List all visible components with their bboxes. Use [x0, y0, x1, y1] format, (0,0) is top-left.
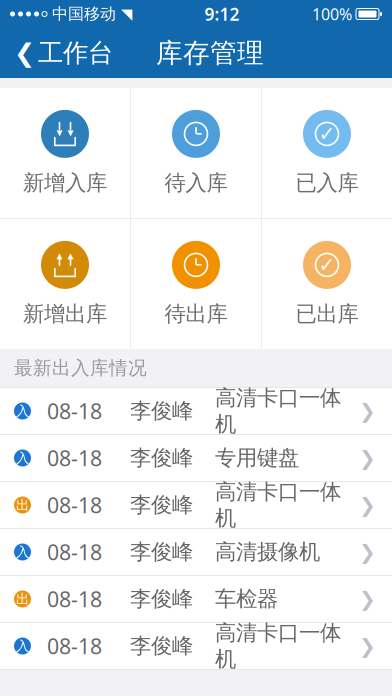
- staticText: 工作台: [38, 37, 113, 68]
- staticText: ❯: [359, 541, 376, 563]
- staticText: ✓: [318, 253, 335, 276]
- button[interactable]: ▴: [0, 219, 130, 349]
- button[interactable]: 入: [0, 623, 392, 669]
- staticText: ▴: [56, 249, 62, 262]
- staticText: 已出库: [295, 301, 358, 327]
- button[interactable]: 入: [0, 388, 392, 434]
- staticText: 已入库: [295, 170, 358, 196]
- staticText: 高清摄像机: [215, 539, 320, 565]
- staticText: 08-18: [47, 538, 102, 566]
- button[interactable]: ❮: [0, 29, 113, 76]
- button[interactable]: 出: [0, 576, 392, 622]
- staticText: 入: [16, 450, 29, 466]
- staticText: 专用键盘: [215, 445, 299, 471]
- staticText: 库存管理: [156, 37, 264, 69]
- staticText: ▴: [67, 249, 73, 262]
- staticText: ✓: [318, 122, 335, 145]
- staticText: 新增出库: [23, 301, 107, 327]
- staticText: 出: [16, 497, 29, 513]
- staticText: ❯: [359, 494, 376, 516]
- staticText: ❯: [359, 588, 376, 610]
- staticText: 中国移动: [52, 4, 116, 24]
- button[interactable]: 入: [0, 435, 392, 481]
- staticText: 李俊峰: [130, 586, 193, 612]
- button[interactable]: 出: [0, 482, 392, 528]
- staticText: 新增入库: [23, 170, 107, 196]
- staticText: 车检器: [215, 586, 278, 612]
- staticText: ❯: [359, 400, 376, 422]
- staticText: ❮: [14, 39, 35, 67]
- staticText: 待出库: [164, 301, 227, 327]
- staticText: 08-18: [47, 491, 102, 519]
- staticText: 入: [16, 544, 29, 560]
- staticText: 李俊峰: [130, 492, 193, 518]
- staticText: 08-18: [47, 397, 102, 425]
- staticText: 出: [16, 591, 29, 607]
- staticText: 李俊峰: [130, 445, 193, 471]
- staticText: 08-18: [47, 632, 102, 660]
- staticText: 高清卡口一体机: [215, 479, 341, 531]
- staticText: 9:12: [204, 2, 239, 25]
- staticText: 08-18: [47, 444, 102, 472]
- button[interactable]: 待入库: [131, 88, 261, 218]
- button[interactable]: 入: [0, 529, 392, 575]
- staticText: ❯: [359, 447, 376, 469]
- staticText: ❯: [359, 635, 376, 657]
- staticText: ◥: [121, 6, 132, 22]
- button[interactable]: ✓: [262, 88, 392, 218]
- button[interactable]: ▾: [0, 88, 130, 218]
- staticText: 待入库: [164, 170, 227, 196]
- staticText: 高清卡口一体机: [215, 385, 341, 437]
- staticText: 李俊峰: [130, 633, 193, 659]
- button[interactable]: 待出库: [131, 219, 261, 349]
- staticText: 入: [16, 403, 29, 419]
- staticText: 最新出入库情况: [14, 356, 147, 379]
- staticText: 100%: [312, 3, 352, 25]
- button[interactable]: ✓: [262, 219, 392, 349]
- staticText: 李俊峰: [130, 539, 193, 565]
- staticText: 入: [16, 638, 29, 654]
- staticText: ▾: [67, 126, 73, 139]
- staticText: 08-18: [47, 585, 102, 613]
- staticText: 高清卡口一体机: [215, 620, 341, 672]
- staticText: ▾: [56, 126, 62, 139]
- staticText: 李俊峰: [130, 398, 193, 424]
